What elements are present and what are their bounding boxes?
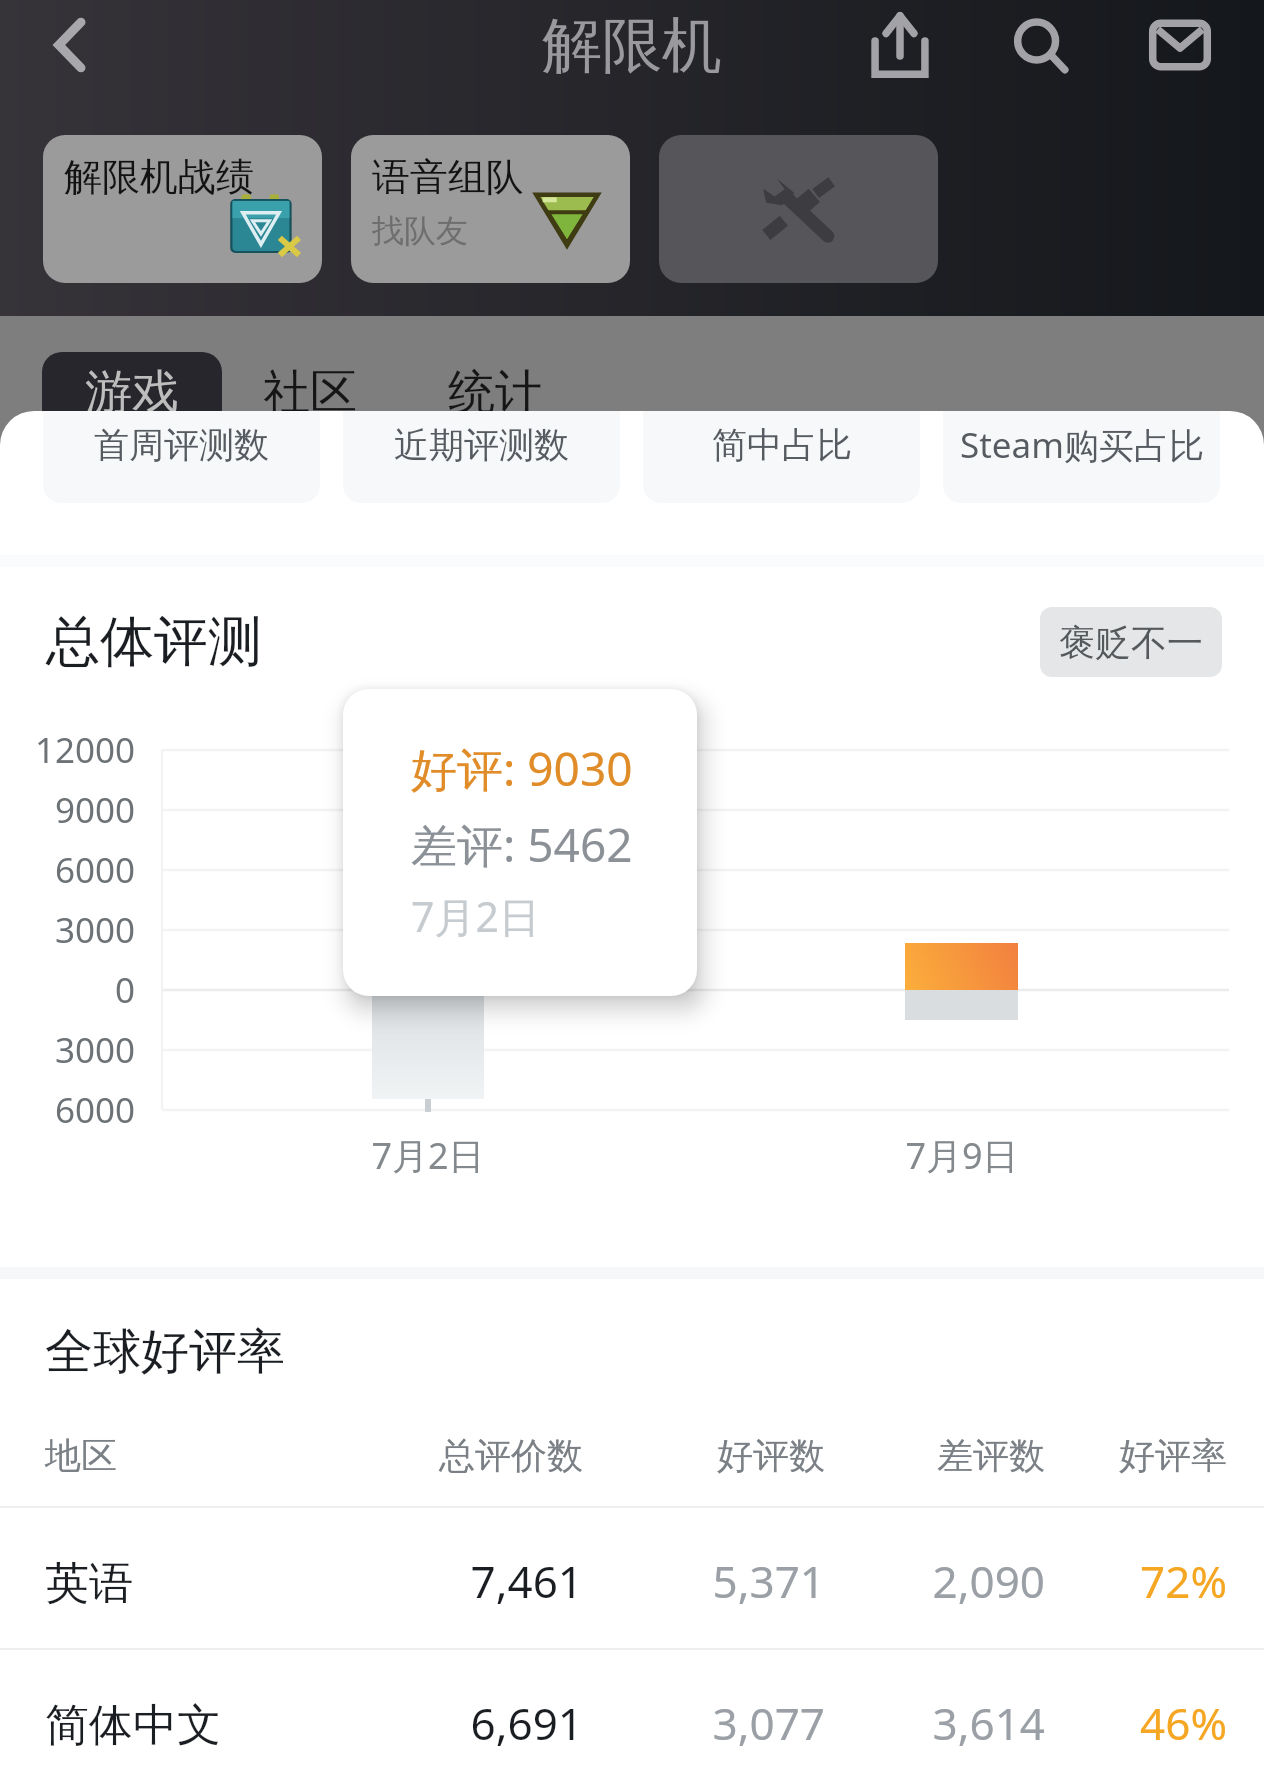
button[interactable]: Back [26, 2, 112, 88]
button[interactable]: 语音组队 [351, 135, 630, 283]
staticText: 褒贬不一 [1059, 620, 1203, 665]
staticText: 7,461 [343, 1551, 583, 1611]
staticText: 全球好评率 [45, 1322, 285, 1382]
staticText: 统计 [448, 363, 542, 422]
staticText: 6000 [0, 846, 135, 894]
staticText: 找队友 [372, 211, 468, 251]
staticText: 7月9日 [862, 1131, 1062, 1180]
staticText: 地区 [45, 1433, 117, 1478]
button[interactable]: Search [986, 0, 1094, 90]
staticText: 首周评测数 [94, 423, 269, 467]
staticText: 3000 [0, 906, 135, 954]
button[interactable]: 游戏 [42, 352, 222, 432]
staticText: 3,614 [805, 1693, 1045, 1753]
staticText: Steam购买占比 [960, 421, 1204, 469]
button[interactable]: Messages [1126, 0, 1234, 90]
staticText: 3000 [0, 1026, 135, 1074]
button[interactable]: 首周评测数 [43, 411, 320, 503]
button[interactable]: Tools [659, 135, 938, 283]
staticText: 9000 [0, 786, 135, 834]
staticText: 简中占比 [712, 423, 852, 467]
staticText: 好评数 [585, 1433, 825, 1478]
staticText: 英语 [45, 1556, 133, 1611]
staticText: 12000 [0, 726, 135, 774]
button[interactable]: 简中占比 [643, 411, 920, 503]
button[interactable]: 近期评测数 [343, 411, 620, 503]
button[interactable]: 英语 [0, 1508, 1264, 1648]
button[interactable]: 统计 [425, 352, 565, 432]
staticText: 好评: 9030 [411, 737, 633, 800]
button[interactable]: 褒贬不一 [1040, 607, 1222, 677]
staticText: 6,691 [343, 1693, 583, 1753]
staticText: 差评数 [805, 1433, 1045, 1478]
staticText: 总评价数 [343, 1433, 583, 1478]
staticText: 解限机 [542, 8, 722, 84]
staticText: 72% [987, 1551, 1227, 1611]
staticText: 简体中文 [45, 1698, 221, 1753]
button[interactable]: Steam购买占比 [943, 411, 1220, 503]
staticText: 3,077 [585, 1693, 825, 1753]
staticText: 好评率 [987, 1433, 1227, 1478]
staticText: 游戏 [85, 363, 179, 422]
staticText: 0 [0, 966, 135, 1014]
staticText: 解限机战绩 [64, 153, 254, 201]
button[interactable]: 社区 [240, 352, 380, 432]
button[interactable]: Share [846, 0, 954, 90]
staticText: 6000 [0, 1086, 135, 1134]
staticText: 近期评测数 [394, 423, 569, 467]
button[interactable]: 简体中文 [0, 1650, 1264, 1778]
staticText: 总体评测 [46, 608, 262, 676]
button[interactable]: 解限机战绩 [43, 135, 322, 283]
staticText: 社区 [263, 363, 357, 422]
staticText: 46% [987, 1693, 1227, 1753]
staticText: 2,090 [805, 1551, 1045, 1611]
staticText: 7月2日 [328, 1131, 528, 1180]
staticText: 5,371 [585, 1551, 825, 1611]
staticText: 7月2日 [411, 888, 540, 944]
staticText: 差评: 5462 [411, 813, 633, 876]
staticText: 语音组队 [372, 153, 524, 201]
